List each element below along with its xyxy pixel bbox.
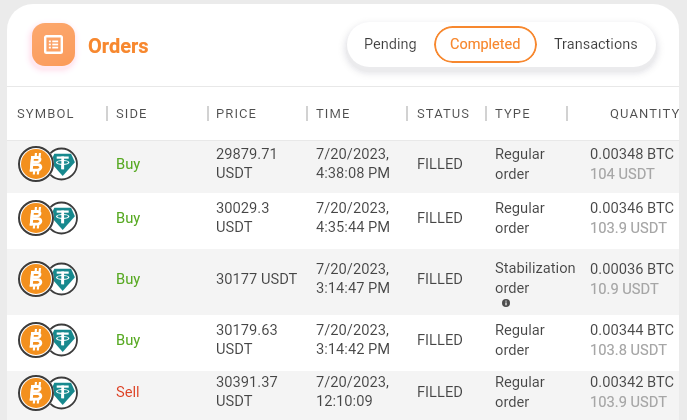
button[interactable]: Buy [7, 193, 679, 249]
staticText: SYMBOL [17, 106, 75, 121]
button[interactable]: Buy [7, 315, 679, 371]
staticText: QUANTITY [610, 106, 679, 121]
staticText: FILLED [417, 331, 463, 348]
staticText: Regular order [495, 199, 545, 236]
button[interactable]: Buy [7, 249, 679, 315]
button[interactable]: Sell [7, 371, 679, 420]
staticText: Buy [116, 270, 141, 287]
staticText: Completed [450, 36, 521, 53]
staticText: 7/20/2023, 4:38:08 PM [316, 145, 391, 182]
staticText: 103.9 USDT [590, 219, 667, 236]
staticText: Pending [364, 36, 417, 53]
staticText: STATUS [417, 106, 471, 121]
staticText: SIDE [116, 106, 148, 121]
staticText: 103.9 USDT [590, 393, 667, 410]
staticText: 7/20/2023, 4:35:44 PM [316, 199, 391, 236]
staticText: Buy [116, 155, 141, 172]
button[interactable]: Buy [7, 141, 679, 193]
staticText: 0.00348 BTC [590, 145, 675, 162]
button[interactable]: Orders [32, 23, 75, 66]
staticText: 103.8 USDT [590, 341, 667, 358]
staticText: 30029.3 USDT [216, 199, 270, 236]
staticText: FILLED [417, 155, 463, 172]
staticText: Regular order [495, 373, 545, 410]
staticText: 0.00342 BTC [590, 373, 675, 390]
staticText: Buy [116, 331, 141, 348]
staticText: 0.00346 BTC [590, 199, 675, 216]
staticText: 10.9 USDT [590, 280, 659, 297]
staticText: 0.00036 BTC [590, 260, 675, 277]
staticText: TYPE [495, 106, 531, 121]
staticText: Sell [116, 383, 140, 400]
staticText: 29879.71 USDT [216, 145, 278, 182]
staticText: 30391.37 USDT [216, 373, 278, 410]
staticText: 0.00344 BTC [590, 321, 675, 338]
staticText: FILLED [417, 270, 463, 287]
staticText: FILLED [417, 209, 463, 226]
staticText: Orders [88, 34, 149, 57]
staticText: FILLED [417, 383, 463, 400]
button[interactable]: Pending [353, 25, 428, 64]
staticText: 30179.63 USDT [216, 321, 278, 358]
button[interactable]: Completed [434, 26, 537, 63]
staticText: Transactions [554, 36, 638, 53]
staticText: Regular order [495, 145, 545, 182]
staticText: Buy [116, 209, 141, 226]
staticText: 30177 USDT [216, 270, 298, 287]
staticText: 104 USDT [590, 165, 655, 182]
staticText: Regular order [495, 321, 545, 358]
staticText: 7/20/2023, 3:14:42 PM [316, 321, 391, 358]
button[interactable]: Transactions [543, 25, 649, 64]
staticText: TIME [316, 106, 351, 121]
staticText: Stabilization order [495, 259, 576, 296]
staticText: 7/20/2023, 3:14:47 PM [316, 260, 391, 297]
staticText: PRICE [216, 106, 258, 121]
staticText: 7/20/2023, 12:10:09 [316, 373, 389, 410]
